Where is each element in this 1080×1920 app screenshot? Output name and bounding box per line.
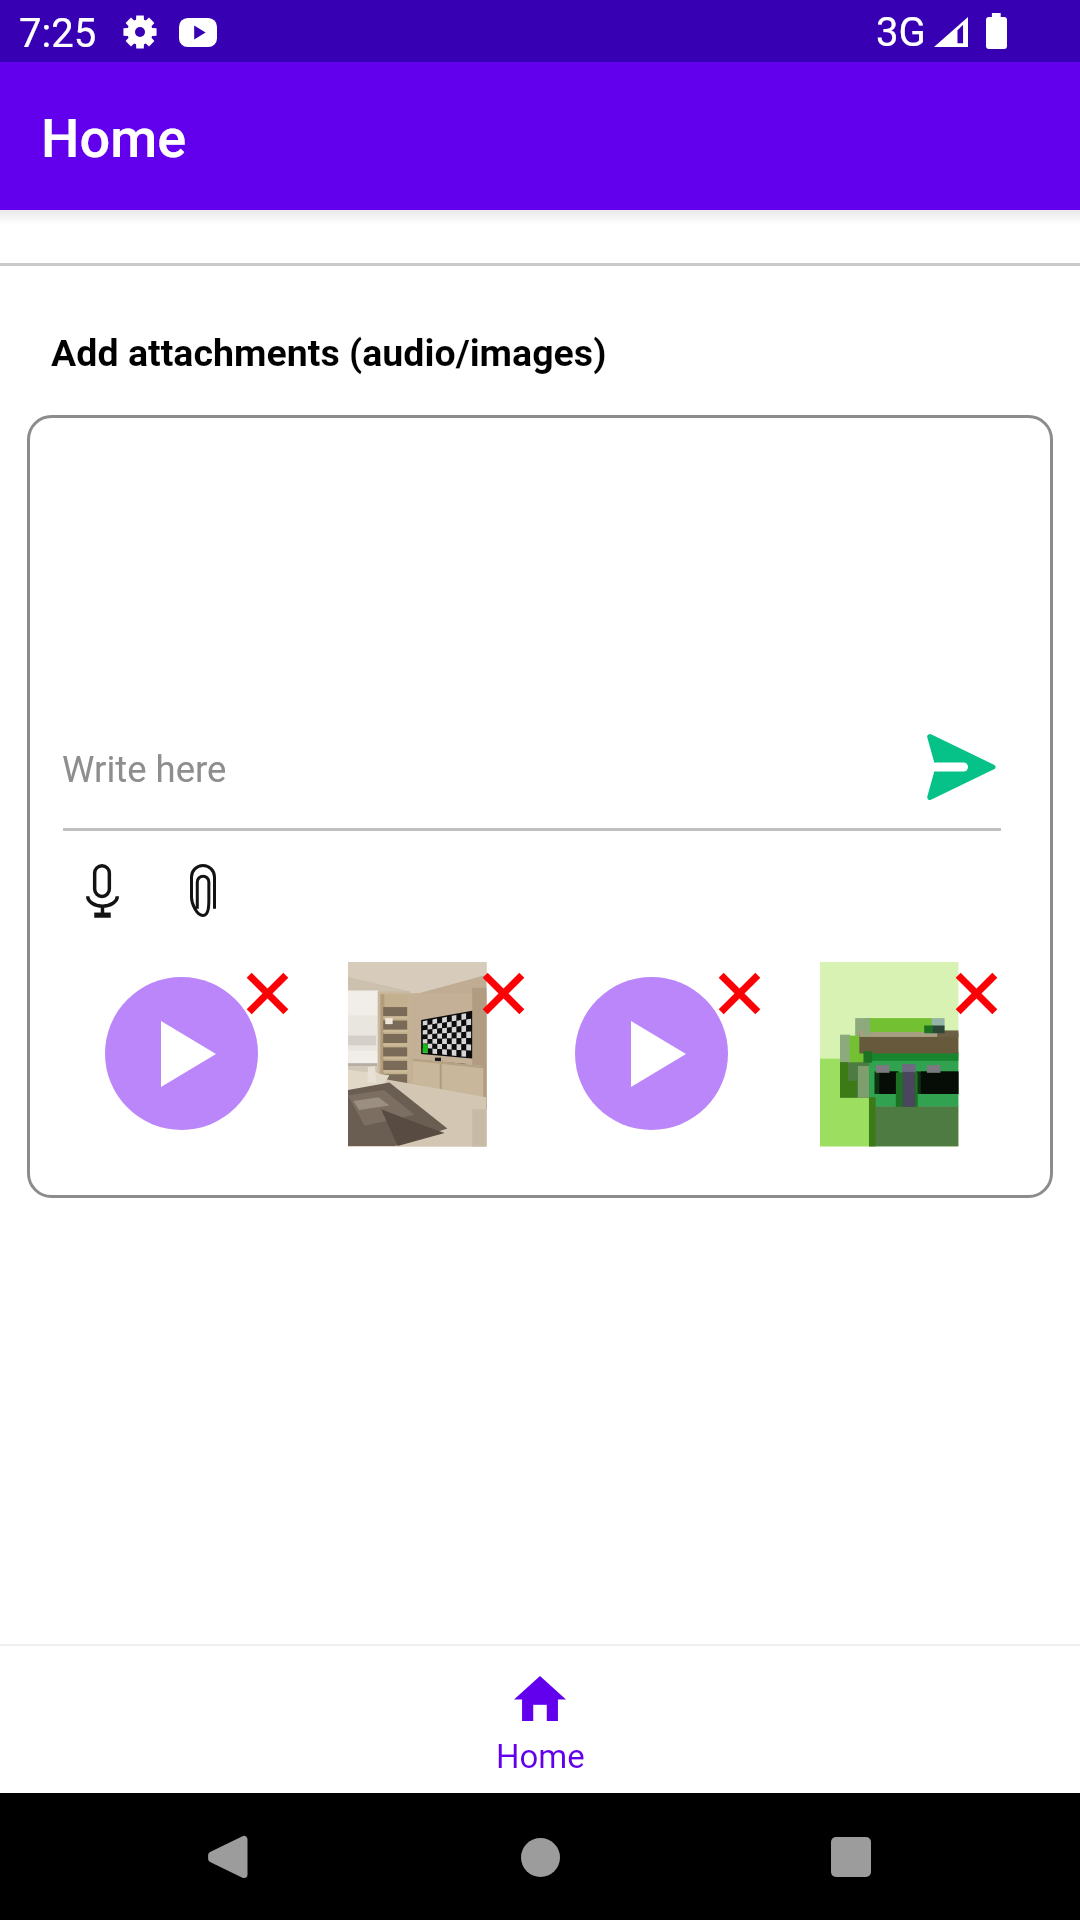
button[interactable]: Attach file bbox=[165, 852, 241, 928]
button[interactable]: Play audio attachment bbox=[105, 977, 258, 1130]
button[interactable]: Remove attachment bbox=[469, 959, 538, 1028]
button[interactable]: Home bbox=[390, 1646, 690, 1793]
staticText: Home bbox=[41, 107, 187, 170]
button[interactable]: Remove attachment bbox=[233, 959, 302, 1028]
button[interactable]: Image attachment bbox=[348, 962, 486, 1146]
button[interactable]: Remove attachment bbox=[705, 959, 774, 1028]
button[interactable]: Play audio attachment bbox=[575, 977, 728, 1130]
staticText: Home bbox=[496, 1737, 585, 1776]
staticText: 3G bbox=[876, 9, 926, 56]
button[interactable]: Send bbox=[902, 709, 1020, 824]
staticText: 7:25 bbox=[19, 10, 97, 57]
staticText: Add attachments (audio/images) bbox=[51, 331, 607, 375]
other: Back bbox=[206, 1836, 244, 1878]
other: Recent apps bbox=[831, 1837, 871, 1877]
button[interactable]: Remove attachment bbox=[942, 959, 1011, 1028]
button[interactable]: Image attachment bbox=[820, 962, 958, 1146]
staticText: Write here bbox=[62, 748, 227, 791]
other: Home bbox=[521, 1838, 560, 1877]
button[interactable]: Record audio bbox=[64, 852, 140, 928]
